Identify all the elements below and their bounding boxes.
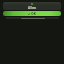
button[interactable]: Allow (3, 2, 61, 10)
button[interactable]: Allow (3, 11, 61, 16)
staticText: Allow (4, 6, 60, 9)
button[interactable]: Deny (6, 17, 59, 19)
staticText: OK (31, 12, 36, 16)
